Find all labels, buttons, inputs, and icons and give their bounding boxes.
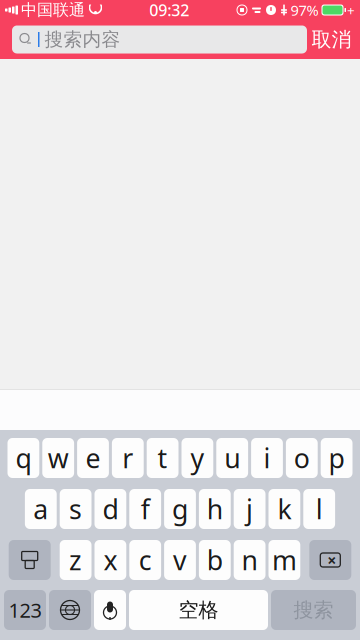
button[interactable]: t [147, 438, 178, 478]
button[interactable]: 空格 [129, 590, 268, 630]
button[interactable]: n [234, 540, 265, 580]
button[interactable]: h [199, 489, 231, 529]
staticText: 取消 [311, 27, 351, 52]
staticText: h [207, 491, 223, 527]
staticText: z [69, 542, 82, 578]
staticText: b [207, 542, 223, 578]
staticText: a [33, 491, 48, 527]
button[interactable]: a [25, 489, 57, 529]
button[interactable]: r [112, 438, 144, 478]
staticText: s [69, 491, 82, 527]
button[interactable]: x [94, 540, 126, 580]
staticText: w [48, 440, 69, 476]
button[interactable]: j [234, 489, 265, 529]
staticText: 09:32 [149, 0, 189, 21]
button[interactable]: k [268, 489, 300, 529]
button[interactable]: 取消 [307, 24, 356, 54]
staticText: c [139, 542, 152, 578]
button[interactable]: Switch keyboard [49, 590, 91, 630]
staticText: p [329, 440, 345, 476]
button[interactable]: i [251, 438, 283, 478]
staticText: q [15, 440, 31, 476]
button[interactable]: b [199, 540, 231, 580]
staticText: l [316, 491, 323, 527]
staticText: 97% [290, 0, 318, 20]
button[interactable]: m [268, 540, 300, 580]
staticText: v [173, 542, 187, 578]
staticText: 搜索内容 [44, 28, 120, 51]
staticText: 中国联通 [21, 0, 85, 20]
staticText: i [263, 440, 270, 476]
staticText: × [327, 549, 336, 571]
staticText: 空格 [178, 598, 218, 622]
button[interactable]: c [129, 540, 161, 580]
button[interactable]: 搜索 [271, 590, 356, 630]
staticText: f [141, 491, 150, 527]
staticText: n [242, 542, 258, 578]
button[interactable]: s [60, 489, 91, 529]
staticText: g [172, 491, 188, 527]
button[interactable]: e [77, 438, 109, 478]
button[interactable]: 搜索内容 [12, 25, 307, 53]
staticText: d [102, 491, 118, 527]
staticText: t [158, 440, 168, 476]
staticText: u [224, 440, 240, 476]
staticText: k [277, 491, 291, 527]
staticText: y [190, 440, 204, 476]
staticText: j [246, 491, 253, 527]
button[interactable]: Dictation [94, 590, 126, 630]
staticText: x [103, 542, 117, 578]
staticText: m [272, 542, 297, 578]
button[interactable]: o [286, 438, 318, 478]
staticText: o [294, 440, 310, 476]
button[interactable]: f [129, 489, 161, 529]
staticText: + [347, 1, 355, 19]
staticText: 123 [8, 597, 41, 623]
staticText: r [122, 440, 133, 476]
staticText: e [85, 440, 100, 476]
button[interactable]: 123 [4, 590, 46, 630]
button[interactable]: w [42, 438, 74, 478]
button[interactable]: z [60, 540, 91, 580]
button[interactable]: p [321, 438, 352, 478]
button[interactable]: y [181, 438, 213, 478]
button[interactable]: Delete [309, 540, 351, 580]
staticText: 搜索 [293, 598, 333, 622]
button[interactable]: u [216, 438, 248, 478]
button[interactable]: g [164, 489, 196, 529]
button[interactable]: v [164, 540, 196, 580]
button[interactable]: q [7, 438, 39, 478]
button[interactable]: Shift [9, 540, 51, 580]
button[interactable]: d [94, 489, 126, 529]
button[interactable]: l [303, 489, 335, 529]
